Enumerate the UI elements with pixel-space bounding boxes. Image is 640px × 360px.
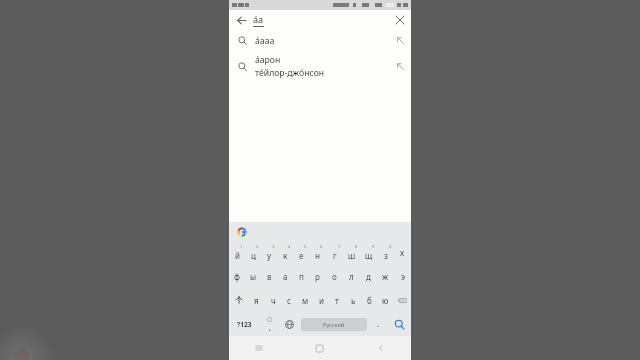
- button[interactable]: о: [326, 264, 343, 288]
- staticText: к: [283, 250, 288, 261]
- button[interactable]: п: [293, 264, 309, 288]
- button[interactable]: я: [248, 288, 265, 312]
- button[interactable]: р: [309, 264, 326, 288]
- button[interactable]: Clear query: [389, 10, 411, 30]
- staticText: п: [299, 271, 304, 282]
- staticText: й: [235, 250, 240, 261]
- button[interactable]: Insert suggestion: [389, 51, 411, 81]
- staticText: э: [401, 271, 405, 282]
- staticText: 5: [304, 244, 307, 250]
- staticText: áарон: [255, 54, 281, 66]
- staticText: ш: [348, 250, 356, 261]
- staticText: у: [267, 250, 272, 261]
- button[interactable]: Google: [236, 226, 247, 237]
- button[interactable]: 0: [377, 240, 394, 264]
- staticText: ж: [382, 271, 389, 282]
- button[interactable]: ж: [377, 264, 394, 288]
- staticText: б: [367, 295, 372, 306]
- button[interactable]: Backspace: [393, 288, 411, 312]
- button[interactable]: Emoji and comma: [259, 312, 279, 336]
- button[interactable]: 2: [245, 240, 261, 264]
- button[interactable]: с: [281, 288, 297, 312]
- button[interactable]: 5: [293, 240, 309, 264]
- staticText: ?123: [237, 320, 252, 329]
- staticText: м: [302, 295, 309, 306]
- button[interactable]: Русский: [301, 318, 367, 331]
- staticText: з: [384, 250, 388, 261]
- staticText: áaaa: [255, 35, 275, 47]
- button[interactable]: ю: [377, 288, 393, 312]
- button[interactable]: Home: [289, 336, 350, 360]
- staticText: .: [377, 319, 380, 329]
- staticText: ц: [251, 250, 256, 261]
- staticText: г: [333, 250, 337, 261]
- button[interactable]: 3: [261, 240, 277, 264]
- button[interactable]: д: [360, 264, 377, 288]
- button[interactable]: а: [277, 264, 293, 288]
- button[interactable]: ь: [345, 288, 361, 312]
- button[interactable]: 9: [360, 240, 377, 264]
- staticText: ь: [351, 295, 356, 306]
- staticText: и: [319, 295, 324, 306]
- staticText: р: [315, 271, 320, 282]
- button[interactable]: 8: [343, 240, 360, 264]
- staticText: с: [287, 295, 291, 306]
- button[interactable]: Period: [369, 312, 387, 336]
- button[interactable]: Insert suggestion: [389, 30, 411, 51]
- button[interactable]: э: [394, 264, 411, 288]
- button[interactable]: ф: [229, 264, 245, 288]
- button[interactable]: б: [361, 288, 377, 312]
- staticText: 0: [389, 244, 392, 250]
- button[interactable]: ?123: [229, 312, 259, 336]
- button[interactable]: т: [329, 288, 345, 312]
- staticText: ю: [382, 295, 389, 306]
- button[interactable]: 6: [309, 240, 326, 264]
- button[interactable]: 1: [229, 240, 245, 264]
- staticText: 2: [256, 244, 259, 250]
- staticText: 3: [272, 244, 275, 250]
- staticText: 4: [288, 244, 291, 250]
- button[interactable]: Recent apps: [229, 336, 289, 360]
- staticText: х: [400, 247, 405, 258]
- staticText: н: [315, 250, 320, 261]
- staticText: ы: [250, 271, 257, 282]
- button[interactable]: Back: [229, 10, 253, 30]
- button[interactable]: áарон: [229, 51, 411, 81]
- button[interactable]: 4: [277, 240, 293, 264]
- button[interactable]: áaaa: [229, 30, 411, 51]
- button[interactable]: л: [343, 264, 360, 288]
- staticText: я: [254, 295, 259, 306]
- button[interactable]: и: [313, 288, 329, 312]
- button[interactable]: в: [261, 264, 277, 288]
- staticText: т: [335, 295, 339, 306]
- staticText: щ: [365, 250, 373, 261]
- button[interactable]: 7: [326, 240, 343, 264]
- staticText: в: [267, 271, 272, 282]
- button[interactable]: ч: [265, 288, 281, 312]
- staticText: ч: [271, 295, 276, 306]
- button[interactable]: Shift: [229, 288, 248, 312]
- staticText: тéйлор-джóнсон: [255, 67, 325, 79]
- staticText: ,: [269, 323, 271, 332]
- staticText: áa: [253, 13, 264, 25]
- staticText: ф: [234, 271, 240, 282]
- staticText: д: [366, 271, 371, 282]
- staticText: л: [349, 271, 354, 282]
- staticText: Русский: [323, 321, 345, 329]
- staticText: о: [332, 271, 337, 282]
- staticText: 6: [320, 244, 323, 250]
- staticText: е: [299, 250, 304, 261]
- staticText: 1: [240, 244, 243, 250]
- button[interactable]: Change keyboard language: [279, 312, 299, 336]
- button[interactable]: м: [297, 288, 313, 312]
- staticText: 7: [338, 244, 341, 250]
- button[interactable]: х: [394, 240, 411, 264]
- staticText: 9: [372, 244, 375, 250]
- button[interactable]: Search: [387, 312, 411, 336]
- staticText: 8: [355, 244, 358, 250]
- staticText: а: [283, 271, 288, 282]
- button[interactable]: ы: [245, 264, 261, 288]
